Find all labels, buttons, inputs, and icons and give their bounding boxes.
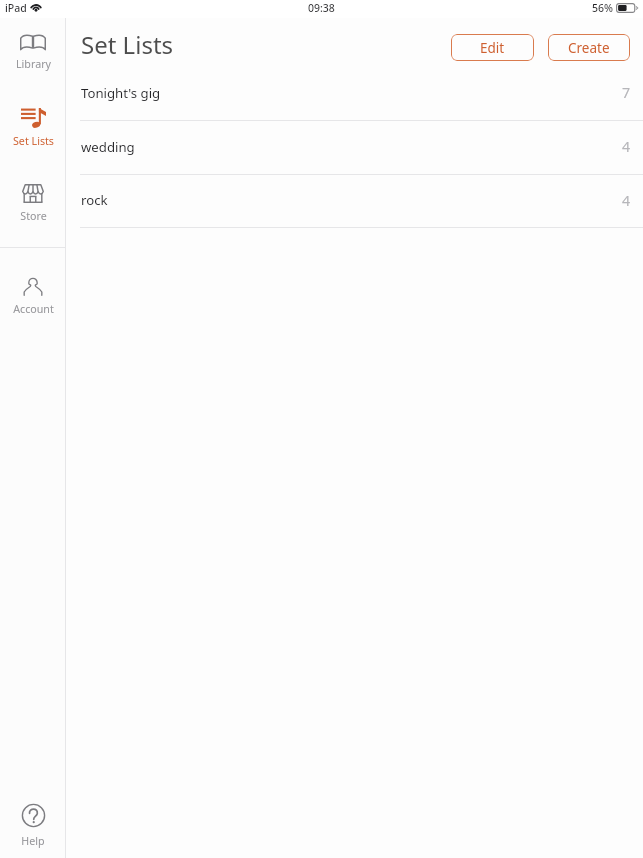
staticText: Help	[21, 834, 45, 849]
button[interactable]: wedding	[66, 121, 643, 175]
staticText: Tonight's gig	[81, 84, 161, 102]
staticText: Store	[20, 209, 47, 224]
staticText: Edit	[480, 39, 505, 57]
staticText: 56%	[592, 1, 613, 15]
button[interactable]: Edit	[451, 34, 534, 61]
staticText: 7	[622, 83, 631, 102]
staticText: rock	[81, 191, 108, 209]
staticText: 4	[622, 137, 631, 156]
staticText: iPad	[5, 1, 27, 15]
staticText: 4	[622, 191, 631, 210]
button[interactable]: Set Lists	[0, 102, 66, 153]
staticText: Set Lists	[81, 28, 174, 61]
staticText: Library	[16, 57, 51, 72]
staticText: Create	[568, 39, 610, 57]
staticText: Account	[13, 302, 54, 317]
staticText: 09:38	[308, 1, 335, 15]
button[interactable]: Tonight's gig	[66, 67, 643, 121]
staticText: Set Lists	[13, 134, 54, 149]
button[interactable]: Store	[0, 178, 66, 228]
button[interactable]: Account	[0, 270, 66, 321]
staticText: wedding	[81, 138, 135, 156]
button[interactable]: Create	[548, 34, 630, 61]
button[interactable]: Library	[0, 28, 66, 76]
button[interactable]: Help	[0, 797, 66, 853]
button[interactable]: rock	[66, 175, 643, 228]
